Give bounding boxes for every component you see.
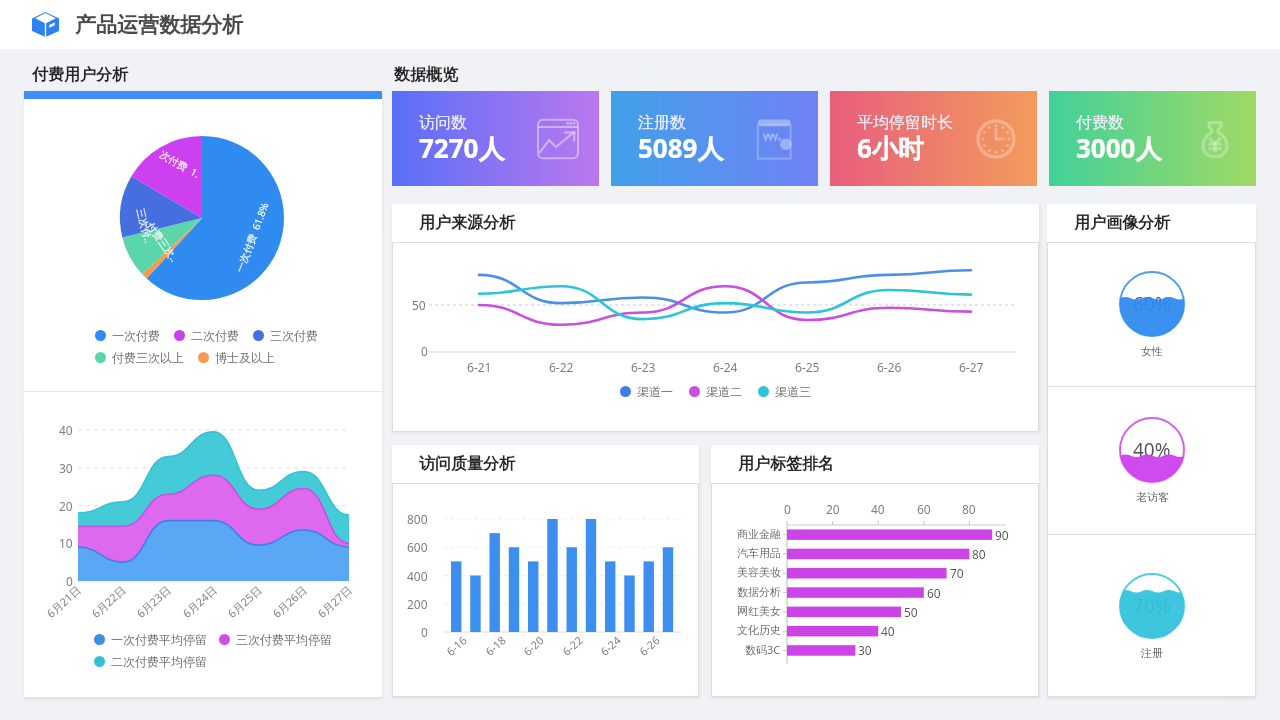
staticText: 20 — [59, 498, 73, 514]
staticText: 6月23日 — [133, 582, 174, 621]
staticText: 用户来源分析 — [419, 213, 515, 233]
staticText: 6-27 — [959, 359, 984, 375]
staticText: 三次付费平均停留 — [236, 632, 332, 647]
staticText: 6-16 — [443, 632, 470, 659]
staticText: 付费用户分析 — [32, 65, 128, 85]
staticText: 次付费 1. — [157, 147, 202, 181]
staticText: 三次付.. — [134, 207, 156, 245]
staticText: 6-26 — [636, 632, 663, 659]
staticText: 5089人 — [638, 130, 724, 166]
staticText: 50 — [904, 604, 918, 620]
staticText: 渠道二 — [706, 384, 742, 399]
staticText: 数据概览 — [394, 65, 458, 85]
staticText: 0 — [66, 573, 73, 589]
staticText: 二次付费 — [191, 328, 239, 343]
staticText: 渠道一 — [637, 384, 673, 399]
staticText: 6-24 — [597, 632, 624, 659]
staticText: 6月24日 — [179, 582, 220, 621]
staticText: 6-24 — [713, 359, 738, 375]
staticText: 600 — [407, 539, 428, 555]
staticText: 访问数 — [419, 113, 467, 133]
staticText: 平均停留时长 — [857, 113, 953, 133]
staticText: 6小时 — [857, 130, 924, 166]
staticText: 6-26 — [877, 359, 902, 375]
staticText: 一次付费平均停留 — [111, 632, 207, 647]
staticText: 网红美女 — [737, 604, 781, 618]
staticText: 访问质量分析 — [419, 454, 515, 474]
staticText: 付费三次.. — [144, 219, 182, 265]
staticText: 渠道三 — [775, 384, 811, 399]
button[interactable]: 60% — [1047, 242, 1256, 386]
staticText: 80 — [972, 546, 986, 562]
staticText: 6月22日 — [88, 582, 129, 621]
staticText: 30 — [59, 460, 73, 476]
staticText: 数码3C — [745, 642, 781, 657]
staticText: 6月21日 — [43, 582, 84, 621]
staticText: 40% — [1133, 437, 1171, 463]
staticText: 博士及以上 — [215, 350, 275, 365]
button[interactable]: 平均停留时长 — [830, 91, 1037, 186]
staticText: 6-20 — [520, 632, 547, 659]
staticText: 6-22 — [549, 359, 574, 375]
staticText: 50 — [412, 297, 426, 313]
staticText: 三次付费 — [270, 328, 318, 343]
button[interactable]: 注册数 — [611, 91, 818, 186]
staticText: 付费数 — [1076, 113, 1124, 133]
staticText: 6-18 — [482, 632, 509, 659]
staticText: 40 — [871, 501, 885, 517]
staticText: 老访客 — [1136, 490, 1169, 504]
staticText: 20 — [826, 501, 840, 517]
staticText: 付费三次以上 — [112, 350, 184, 365]
staticText: 60% — [1133, 291, 1171, 317]
staticText: 文化历史 — [737, 623, 781, 637]
staticText: 6月25日 — [224, 582, 265, 621]
staticText: 6-21 — [467, 359, 492, 375]
staticText: 70 — [950, 565, 964, 581]
staticText: 一次付费 — [112, 328, 160, 343]
staticText: 0 — [421, 624, 428, 640]
staticText: 产品运营数据分析 — [75, 12, 243, 38]
staticText: 90 — [995, 527, 1009, 543]
staticText: 美容美妆 — [737, 565, 781, 579]
staticText: 60 — [917, 501, 931, 517]
staticText: 注册数 — [638, 113, 686, 133]
staticText: 数据分析 — [737, 585, 781, 599]
button[interactable]: 访问数 — [392, 91, 599, 186]
staticText: 6-25 — [795, 359, 820, 375]
staticText: 二次付费平均停留 — [111, 654, 207, 669]
staticText: 一次付费 61.8% — [232, 200, 272, 274]
staticText: 注册 — [1141, 646, 1163, 660]
staticText: 0 — [421, 343, 428, 359]
staticText: 10 — [59, 535, 73, 551]
staticText: 3000人 — [1076, 130, 1162, 166]
staticText: 400 — [407, 568, 428, 584]
button[interactable]: 70% — [1047, 535, 1256, 697]
staticText: 40 — [881, 623, 895, 639]
staticText: 6月27日 — [314, 582, 355, 621]
button[interactable]: 40% — [1047, 387, 1256, 534]
staticText: 40 — [59, 422, 73, 438]
button[interactable]: 付费数 — [1049, 91, 1256, 186]
staticText: 女性 — [1141, 344, 1163, 358]
staticText: 汽车用品 — [737, 546, 781, 560]
staticText: 70% — [1133, 593, 1171, 619]
other: Logo — [32, 12, 59, 37]
staticText: 7270人 — [419, 130, 505, 166]
staticText: 6月26日 — [269, 582, 310, 621]
staticText: 6-23 — [631, 359, 656, 375]
staticText: 80 — [962, 501, 976, 517]
staticText: 用户标签排名 — [738, 454, 834, 474]
staticText: 30 — [858, 642, 872, 658]
staticText: 60 — [927, 585, 941, 601]
staticText: 0 — [784, 501, 791, 517]
staticText: 6-22 — [559, 632, 586, 659]
staticText: 商业金融 — [737, 527, 781, 541]
staticText: 用户画像分析 — [1074, 213, 1170, 233]
staticText: 200 — [407, 596, 428, 612]
staticText: 800 — [407, 511, 428, 527]
